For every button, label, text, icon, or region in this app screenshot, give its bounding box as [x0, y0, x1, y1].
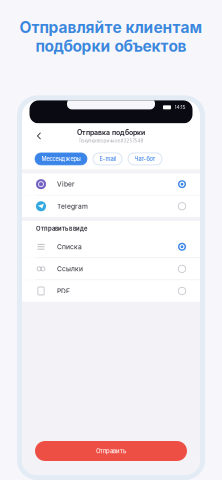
staticText: PDF: [57, 287, 70, 295]
staticText: Отправка подборки: [77, 128, 145, 137]
staticText: E-mail: [99, 155, 115, 162]
button[interactable]: Отправить: [35, 441, 187, 461]
staticText: Отправить: [96, 447, 126, 455]
staticText: Чат-бот: [134, 155, 155, 162]
staticText: Списка: [57, 243, 82, 251]
staticText: Отправляйте клиентам: [19, 18, 202, 37]
button[interactable]: Чат-бот: [128, 153, 162, 165]
button[interactable]: PDF: [22, 280, 200, 302]
staticText: Покупка вторичное #3257548: [78, 138, 143, 143]
button[interactable]: Back: [33, 130, 45, 142]
staticText: подборки объектов: [35, 37, 186, 55]
button[interactable]: Telegram: [22, 195, 200, 217]
button[interactable]: E-mail: [93, 153, 122, 165]
staticText: Ссылки: [57, 265, 83, 273]
button[interactable]: Мессенджеры: [35, 153, 87, 165]
staticText: Telegram: [57, 202, 88, 210]
button[interactable]: Viber: [22, 173, 200, 195]
button[interactable]: Списка: [22, 236, 200, 257]
button[interactable]: Ссылки: [22, 258, 200, 280]
staticText: Отправить в виде: [36, 225, 87, 232]
staticText: Viber: [57, 180, 75, 188]
staticText: Мессенджеры: [41, 155, 80, 162]
staticText: 14:15: [174, 104, 185, 110]
